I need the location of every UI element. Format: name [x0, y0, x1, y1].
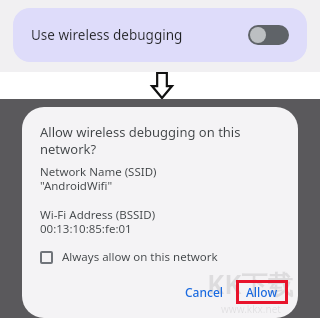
button[interactable]: Use wireless debugging: [13, 8, 307, 62]
staticText: Always allow on this network: [62, 249, 218, 265]
staticText: Allow: [246, 284, 278, 300]
button[interactable]: Cancel: [177, 280, 232, 304]
staticText: Allow wireless debugging on this network…: [40, 123, 241, 158]
staticText: www.kkx.net: [221, 302, 281, 316]
staticText: Network Name (SSID) "AndroidWifi": [40, 164, 157, 194]
staticText: Cancel: [185, 284, 224, 300]
button[interactable]: Always allow on this network: [40, 247, 218, 267]
staticText: Use wireless debugging: [31, 26, 183, 44]
staticText: KK下载: [207, 266, 294, 302]
button[interactable]: Allow: [236, 280, 288, 304]
button[interactable]: Use wireless debugging toggle: [248, 25, 289, 45]
staticText: Wi-Fi Address (BSSID) 00:13:10:85:fe:01: [40, 207, 156, 237]
